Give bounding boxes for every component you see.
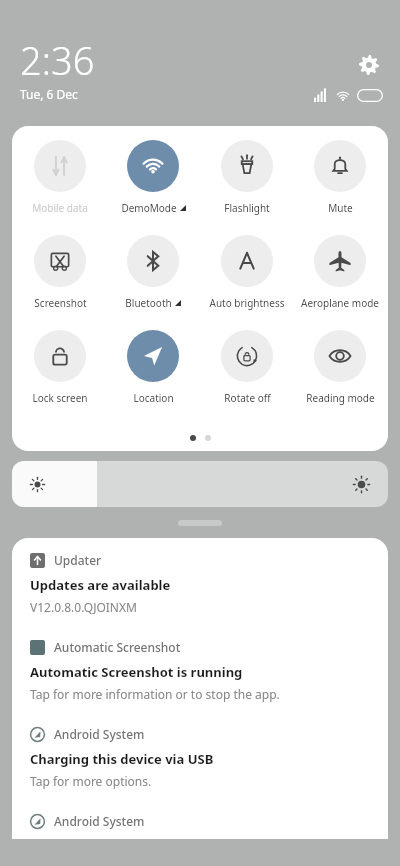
- button[interactable]: Android System: [12, 712, 388, 799]
- button[interactable]: Auto brightness: [202, 235, 292, 310]
- staticText: Flashlight: [224, 201, 270, 215]
- staticText: Updates are available: [30, 576, 171, 594]
- button[interactable]: Automatic Screenshot: [12, 625, 388, 712]
- button[interactable]: Brightness: [12, 461, 388, 507]
- staticText: V12.0.8.0.QJOINXM: [30, 599, 137, 615]
- button[interactable]: DemoMode: [108, 140, 198, 215]
- button[interactable]: Screenshot: [15, 235, 105, 310]
- staticText: Charging this device via USB: [30, 750, 214, 768]
- button[interactable]: Lock screen: [15, 330, 105, 405]
- button[interactable]: Updater: [12, 538, 388, 625]
- staticText: Bluetooth: [125, 296, 172, 310]
- staticText: Android System: [54, 813, 145, 829]
- staticText: Mobile data: [32, 201, 88, 215]
- staticText: Updater: [54, 552, 102, 568]
- button[interactable]: Flashlight: [202, 140, 292, 215]
- staticText: Tue, 6 Dec: [20, 86, 78, 102]
- staticText: Reading mode: [306, 391, 375, 405]
- staticText: Tap for more options.: [30, 773, 152, 789]
- button[interactable]: Reading mode: [295, 330, 385, 405]
- button[interactable]: Mobile data: [15, 140, 105, 215]
- button[interactable]: Location: [108, 330, 198, 405]
- staticText: Location: [133, 391, 174, 405]
- staticText: Aeroplane mode: [301, 296, 379, 310]
- button[interactable]: Android System: [12, 799, 388, 839]
- button[interactable]: Expand: [178, 520, 222, 526]
- staticText: DemoMode: [121, 201, 177, 215]
- staticText: Screenshot: [34, 296, 87, 310]
- button[interactable]: Bluetooth: [108, 235, 198, 310]
- button[interactable]: Mute: [295, 140, 385, 215]
- button[interactable]: Rotate off: [202, 330, 292, 405]
- staticText: Rotate off: [224, 391, 271, 405]
- button[interactable]: Settings: [352, 48, 386, 82]
- staticText: Tap for more information or to stop the …: [30, 686, 280, 702]
- staticText: Mute: [328, 201, 353, 215]
- staticText: Automatic Screenshot: [54, 639, 181, 655]
- staticText: Lock screen: [32, 391, 88, 405]
- staticText: Automatic Screenshot is running: [30, 663, 243, 681]
- staticText: Android System: [54, 726, 145, 742]
- staticText: Auto brightness: [209, 296, 285, 310]
- button[interactable]: Aeroplane mode: [295, 235, 385, 310]
- staticText: 2:36: [20, 34, 95, 86]
